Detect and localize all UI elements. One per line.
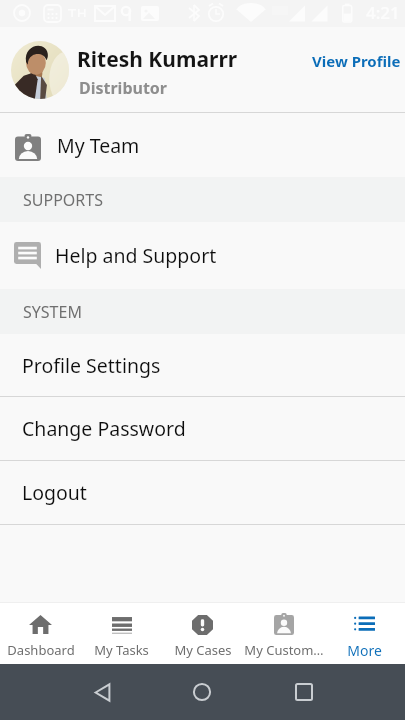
- button[interactable]: Dashboard: [0, 603, 81, 664]
- staticText: My Cases: [174, 641, 232, 659]
- staticText: My Custom…: [244, 641, 324, 659]
- staticText: Help and Support: [55, 242, 217, 269]
- button[interactable]: View Profile: [300, 41, 405, 81]
- staticText: Logout: [22, 479, 87, 506]
- button[interactable]: Help and Support: [0, 222, 405, 289]
- button[interactable]: Logout: [0, 461, 405, 524]
- button[interactable]: My Tasks: [81, 603, 162, 664]
- button[interactable]: My Custom…: [243, 603, 324, 664]
- staticText: Change Password: [22, 415, 186, 442]
- staticText: Profile Settings: [22, 352, 161, 379]
- staticText: Dashboard: [7, 641, 75, 659]
- staticText: Ritesh Kumarrr: [77, 45, 238, 74]
- staticText: More: [347, 641, 382, 660]
- button[interactable]: My Team: [0, 113, 405, 177]
- button[interactable]: My Cases: [162, 603, 243, 664]
- button[interactable]: Back: [78, 664, 126, 720]
- staticText: SUPPORTS: [23, 189, 103, 211]
- button[interactable]: More: [324, 603, 405, 664]
- staticText: My Tasks: [94, 641, 149, 659]
- button[interactable]: Profile Settings: [0, 334, 405, 396]
- staticText: Distributor: [79, 77, 168, 99]
- button[interactable]: Change Password: [0, 397, 405, 460]
- staticText: View Profile: [312, 51, 401, 71]
- staticText: My Team: [57, 132, 140, 159]
- staticText: SYSTEM: [23, 301, 82, 323]
- button[interactable]: Recent apps: [280, 664, 328, 720]
- button[interactable]: Home: [178, 664, 226, 720]
